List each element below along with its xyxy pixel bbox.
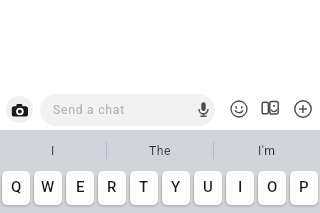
button[interactable]: Camera (6, 96, 33, 123)
button[interactable]: U (194, 171, 222, 205)
staticText: I'm (258, 144, 276, 158)
button[interactable]: Send a chat (40, 94, 215, 126)
button[interactable]: The (106, 130, 213, 171)
button[interactable]: T (130, 171, 158, 205)
button[interactable]: P (290, 171, 318, 205)
button[interactable]: I'm (213, 130, 320, 171)
button[interactable]: R (98, 171, 126, 205)
staticText: Y (171, 178, 181, 196)
button[interactable]: Q (2, 171, 30, 205)
button[interactable]: More options (294, 100, 312, 118)
staticText: E (76, 178, 85, 196)
button[interactable]: E (66, 171, 94, 205)
button[interactable]: O (258, 171, 286, 205)
staticText: O (267, 178, 278, 196)
staticText: U (203, 178, 213, 196)
staticText: R (107, 178, 117, 196)
staticText: T (139, 178, 149, 196)
button[interactable]: Y (162, 171, 190, 205)
staticText: Q (11, 178, 22, 196)
button[interactable]: I (0, 130, 106, 171)
staticText: I (51, 144, 55, 158)
staticText: The (149, 144, 171, 158)
button[interactable]: Emoji (230, 100, 248, 118)
button[interactable]: Stickers (261, 100, 279, 118)
staticText: I (238, 178, 243, 196)
button[interactable]: W (34, 171, 62, 205)
staticText: W (41, 178, 55, 196)
button[interactable]: I (226, 171, 254, 205)
button[interactable]: Voice message (193, 99, 214, 120)
staticText: Send a chat (53, 103, 125, 117)
staticText: P (299, 178, 309, 196)
